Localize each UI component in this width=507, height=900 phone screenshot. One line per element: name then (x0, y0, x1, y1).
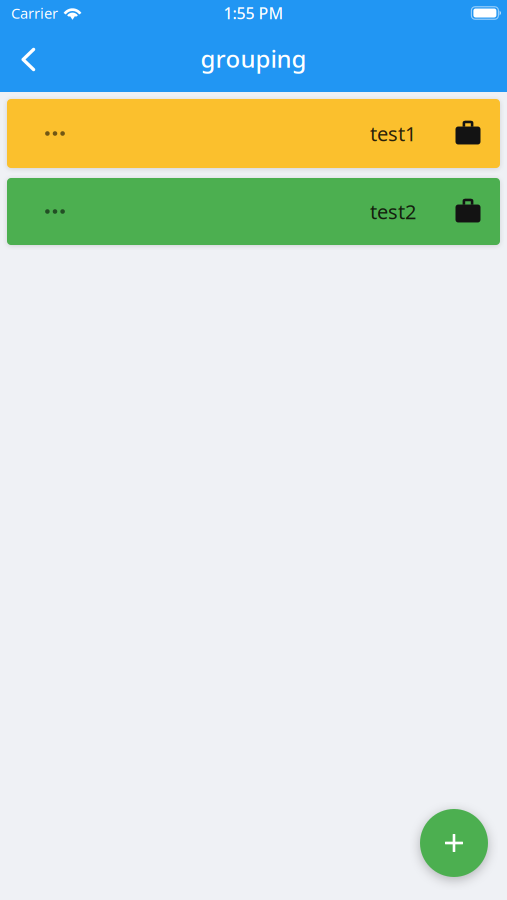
staticText: test1 (370, 120, 416, 147)
button[interactable]: Add (420, 809, 488, 877)
staticText: test2 (370, 198, 416, 225)
staticText: 1:55 PM (223, 2, 283, 24)
button[interactable]: test1 (7, 99, 500, 168)
button[interactable]: test2 (7, 178, 500, 245)
button[interactable]: Back (0, 33, 50, 85)
staticText: grouping (200, 43, 306, 74)
staticText: Carrier (11, 3, 58, 23)
